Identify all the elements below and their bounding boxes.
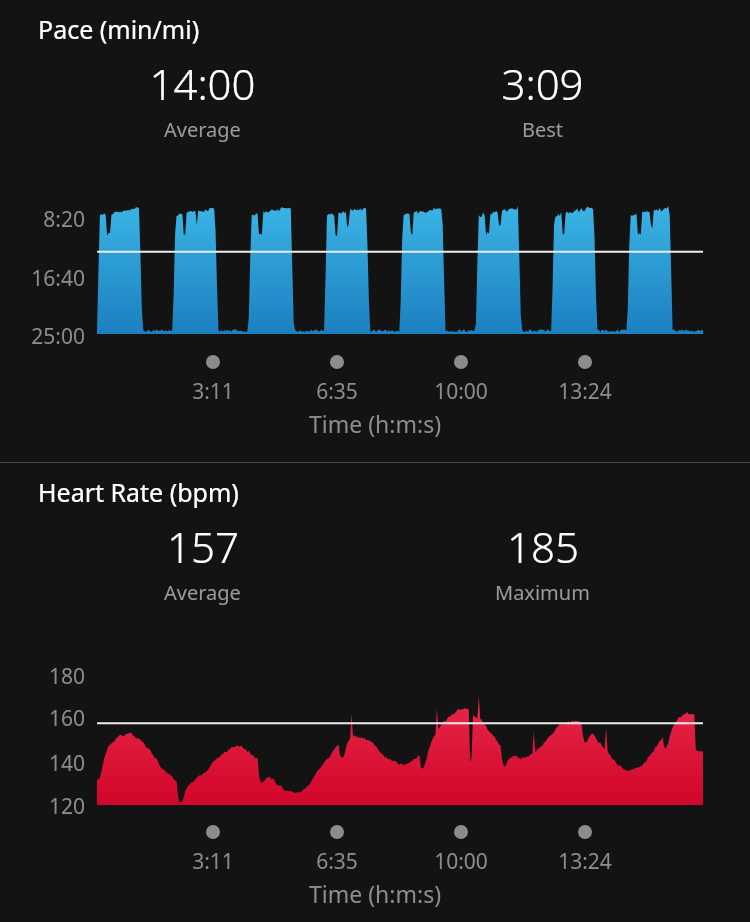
button[interactable]: 3:09 (415, 55, 670, 139)
staticText: Heart Rate (bpm) (38, 475, 239, 509)
staticText: Pace (min/mi) (38, 12, 200, 46)
staticText: 6:35 (316, 377, 358, 406)
staticText: 185 (507, 518, 579, 575)
staticText: 13:24 (558, 847, 612, 876)
button[interactable]: Pace (min/mi) chart (0, 0, 750, 462)
staticText: 8:20 (0, 205, 85, 234)
staticText: 25:00 (0, 322, 85, 351)
button[interactable]: Heart Rate (bpm) chart (0, 463, 750, 922)
button[interactable]: 185 (415, 518, 670, 602)
staticText: 3:09 (501, 55, 584, 112)
staticText: Time (h:m:s) (309, 408, 442, 439)
staticText: 160 (0, 704, 85, 733)
staticText: 6:35 (316, 847, 358, 876)
staticText: 157 (167, 518, 239, 575)
staticText: 180 (0, 662, 85, 691)
staticText: 10:00 (434, 847, 488, 876)
staticText: 16:40 (0, 264, 85, 293)
staticText: Average (164, 116, 241, 143)
staticText: 14:00 (149, 55, 256, 112)
staticText: Time (h:m:s) (309, 878, 442, 909)
button[interactable]: 157 (75, 518, 330, 602)
staticText: 140 (0, 749, 85, 778)
button[interactable]: 14:00 (75, 55, 330, 139)
staticText: 10:00 (434, 377, 488, 406)
staticText: Best (522, 116, 564, 143)
staticText: Maximum (495, 579, 590, 606)
staticText: 120 (0, 792, 85, 821)
staticText: 3:11 (192, 847, 234, 876)
staticText: 13:24 (558, 377, 612, 406)
staticText: Average (164, 579, 241, 606)
staticText: 3:11 (192, 377, 234, 406)
